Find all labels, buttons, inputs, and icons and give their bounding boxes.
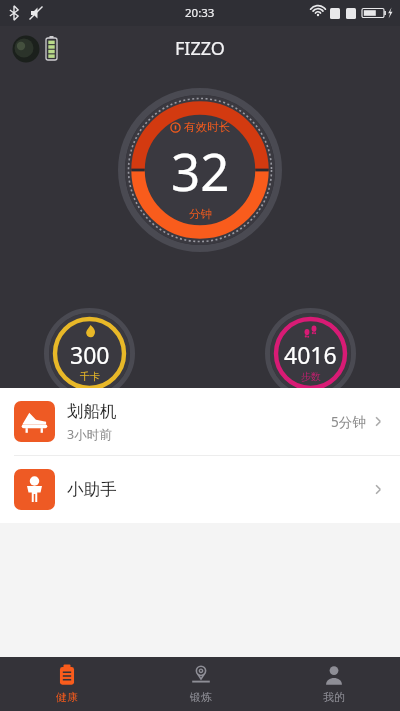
staticText: 3小时前: [67, 426, 112, 443]
staticText: 健康: [56, 690, 78, 704]
staticText: 步数: [301, 370, 321, 383]
staticText: 有效时长: [184, 120, 230, 134]
staticText: 4016: [284, 339, 337, 370]
button[interactable]: 有效时长: [118, 88, 282, 252]
staticText: 千卡: [80, 370, 100, 383]
staticText: FIZZO: [175, 36, 225, 61]
staticText: 300: [70, 339, 110, 370]
button[interactable]: 锻炼: [134, 657, 267, 711]
other: Watch battery status: [10, 33, 56, 65]
button[interactable]: 小助手: [0, 456, 400, 523]
button[interactable]: 4016: [265, 308, 356, 399]
button[interactable]: 300: [44, 308, 135, 399]
staticText: 划船机: [67, 401, 117, 422]
staticText: 小助手: [67, 479, 371, 500]
button[interactable]: 健康: [0, 657, 134, 711]
staticText: 分钟: [189, 207, 212, 221]
staticText: 20:33: [185, 5, 215, 21]
button[interactable]: 我的: [267, 657, 400, 711]
staticText: 32: [171, 136, 230, 205]
staticText: 锻炼: [190, 690, 212, 704]
button[interactable]: 划船机: [0, 388, 400, 455]
staticText: 5分钟: [331, 413, 366, 431]
staticText: 我的: [323, 690, 345, 704]
